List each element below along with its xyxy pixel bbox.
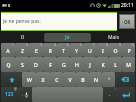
staticText: Z xyxy=(21,47,24,54)
staticText: B xyxy=(81,76,85,83)
staticText: X xyxy=(41,76,45,83)
staticText: 20:11 xyxy=(121,2,134,9)
button[interactable]: T xyxy=(57,43,70,57)
button[interactable]: V xyxy=(63,72,76,87)
staticText: G xyxy=(62,61,66,68)
staticText: 123 xyxy=(5,91,14,98)
staticText: M xyxy=(126,61,131,68)
staticText: L xyxy=(114,61,117,68)
button[interactable]: Symbols xyxy=(1,87,18,102)
staticText: Mais xyxy=(108,34,120,41)
button[interactable]: D xyxy=(29,57,43,72)
staticText xyxy=(67,91,69,98)
staticText: Y xyxy=(75,47,78,54)
staticText: S xyxy=(21,61,24,68)
staticText: 0 xyxy=(132,43,134,47)
staticText: 1 xyxy=(12,43,14,47)
button[interactable]: R xyxy=(43,43,57,57)
button[interactable]: B xyxy=(76,72,89,87)
staticText: P xyxy=(127,47,131,54)
button[interactable]: K xyxy=(96,57,109,72)
staticText: Il xyxy=(21,34,24,41)
staticText: Je xyxy=(65,34,70,41)
staticText: . xyxy=(109,91,111,98)
button[interactable]: X xyxy=(36,72,50,87)
staticText: D xyxy=(34,61,38,68)
staticText: W xyxy=(27,76,32,83)
button[interactable]: Mais xyxy=(91,32,136,43)
staticText: @ xyxy=(14,87,17,91)
staticText: 6 xyxy=(80,43,82,47)
staticText: J xyxy=(89,61,91,68)
button[interactable]: Je xyxy=(45,33,90,42)
staticText: V xyxy=(68,76,72,83)
staticText: N xyxy=(94,76,98,83)
staticText: K xyxy=(101,61,105,68)
staticText: F xyxy=(49,61,52,68)
button[interactable]: W xyxy=(22,72,36,87)
button[interactable]: Period xyxy=(103,87,117,102)
button[interactable]: Y xyxy=(70,43,83,57)
staticText: Je ne pense pas. xyxy=(3,18,41,25)
staticText: U xyxy=(88,47,92,54)
button[interactable]: U xyxy=(83,43,96,57)
staticText: R xyxy=(48,47,52,54)
button[interactable]: P xyxy=(122,43,135,57)
button[interactable]: M xyxy=(122,57,135,72)
button[interactable]: H xyxy=(70,57,83,72)
staticText: , xyxy=(22,91,24,98)
staticText: 8 xyxy=(106,43,108,47)
button[interactable]: Backspace xyxy=(115,72,135,87)
button[interactable]: Q xyxy=(1,57,15,72)
staticText: A xyxy=(6,47,10,54)
staticText: T xyxy=(62,47,65,54)
staticText: 9 xyxy=(119,43,121,47)
button[interactable]: I xyxy=(96,43,109,57)
button[interactable]: OK xyxy=(119,14,135,29)
button[interactable]: ' xyxy=(102,72,115,87)
staticText: : xyxy=(115,87,116,91)
staticText: 5 xyxy=(67,43,69,47)
staticText: E xyxy=(35,47,38,54)
staticText: 7 xyxy=(93,43,95,47)
staticText: 3 xyxy=(40,43,42,47)
button[interactable]: Je ne pense pas. xyxy=(1,12,117,31)
button[interactable]: S xyxy=(15,57,29,72)
button[interactable]: O xyxy=(109,43,122,57)
button[interactable]: F xyxy=(43,57,57,72)
staticText: ' xyxy=(108,76,110,83)
button[interactable]: A xyxy=(1,43,15,57)
button[interactable]: C xyxy=(50,72,63,87)
button[interactable]: E xyxy=(29,43,43,57)
button[interactable]: N xyxy=(89,72,102,87)
button[interactable]: L xyxy=(109,57,122,72)
staticText: Q xyxy=(6,61,11,68)
button[interactable]: Il xyxy=(0,32,44,43)
button[interactable]: Voice input xyxy=(18,87,32,102)
button[interactable]: Shift xyxy=(1,72,22,87)
button[interactable]: G xyxy=(57,57,70,72)
button[interactable]: Z xyxy=(15,43,29,57)
staticText: I xyxy=(102,47,104,54)
staticText: H xyxy=(75,61,79,68)
button[interactable]: Space xyxy=(32,87,103,102)
staticText: C xyxy=(55,76,59,83)
staticText: OK xyxy=(124,19,131,25)
button[interactable]: J xyxy=(83,57,96,72)
staticText: 4 xyxy=(54,43,56,47)
button[interactable]: Enter xyxy=(117,87,135,102)
staticText: O xyxy=(113,47,118,54)
staticText: 2 xyxy=(26,43,28,47)
